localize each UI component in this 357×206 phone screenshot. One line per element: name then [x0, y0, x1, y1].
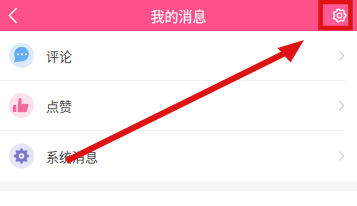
staticText: 系统消息: [46, 147, 98, 165]
staticText: 评论: [46, 46, 72, 65]
button[interactable]: Back: [0, 0, 22, 31]
button[interactable]: 点赞: [0, 81, 357, 131]
button[interactable]: 系统消息: [0, 131, 357, 181]
staticText: 我的消息: [150, 5, 206, 26]
button[interactable]: Settings: [325, 3, 357, 28]
staticText: 点赞: [46, 96, 72, 115]
button[interactable]: 评论: [0, 31, 357, 81]
